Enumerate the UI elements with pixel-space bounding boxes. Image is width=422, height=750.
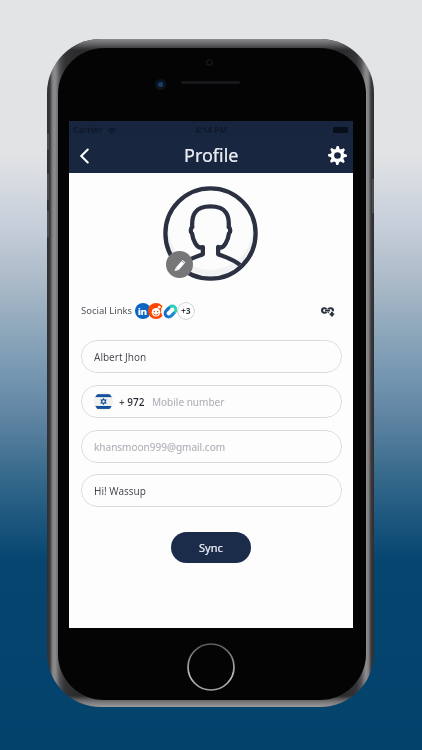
button[interactable]: Edit profile photo xyxy=(166,251,193,278)
button[interactable]: Sync xyxy=(171,532,251,563)
button[interactable]: + 972 xyxy=(81,385,342,418)
button[interactable]: Back xyxy=(69,138,99,173)
button[interactable]: Add link xyxy=(315,300,339,321)
staticText: Sync xyxy=(199,540,223,555)
button[interactable]: khansmoon999@gmail.com xyxy=(81,430,342,463)
button[interactable]: Settings xyxy=(321,138,353,173)
staticText: Albert Jhon xyxy=(94,350,147,364)
button[interactable]: LinkedIn xyxy=(135,303,151,319)
staticText: Profile xyxy=(184,143,239,168)
staticText: khansmoon999@gmail.com xyxy=(94,440,226,454)
staticText: +3 xyxy=(181,305,191,317)
button[interactable]: Hi! Wassup xyxy=(81,474,342,507)
staticText: Social Links xyxy=(81,304,133,317)
button[interactable]: Reddit xyxy=(148,303,164,319)
staticText: + 972 xyxy=(119,395,145,409)
button[interactable]: +3 xyxy=(177,302,195,320)
staticText: Hi! Wassup xyxy=(94,484,146,498)
staticText: 4:14 PM xyxy=(195,124,228,136)
button[interactable]: Website link xyxy=(161,302,179,320)
staticText: Carrier xyxy=(73,124,103,136)
staticText: Mobile number xyxy=(152,395,225,409)
button[interactable]: Albert Jhon xyxy=(81,340,342,373)
staticText: in xyxy=(138,305,148,318)
